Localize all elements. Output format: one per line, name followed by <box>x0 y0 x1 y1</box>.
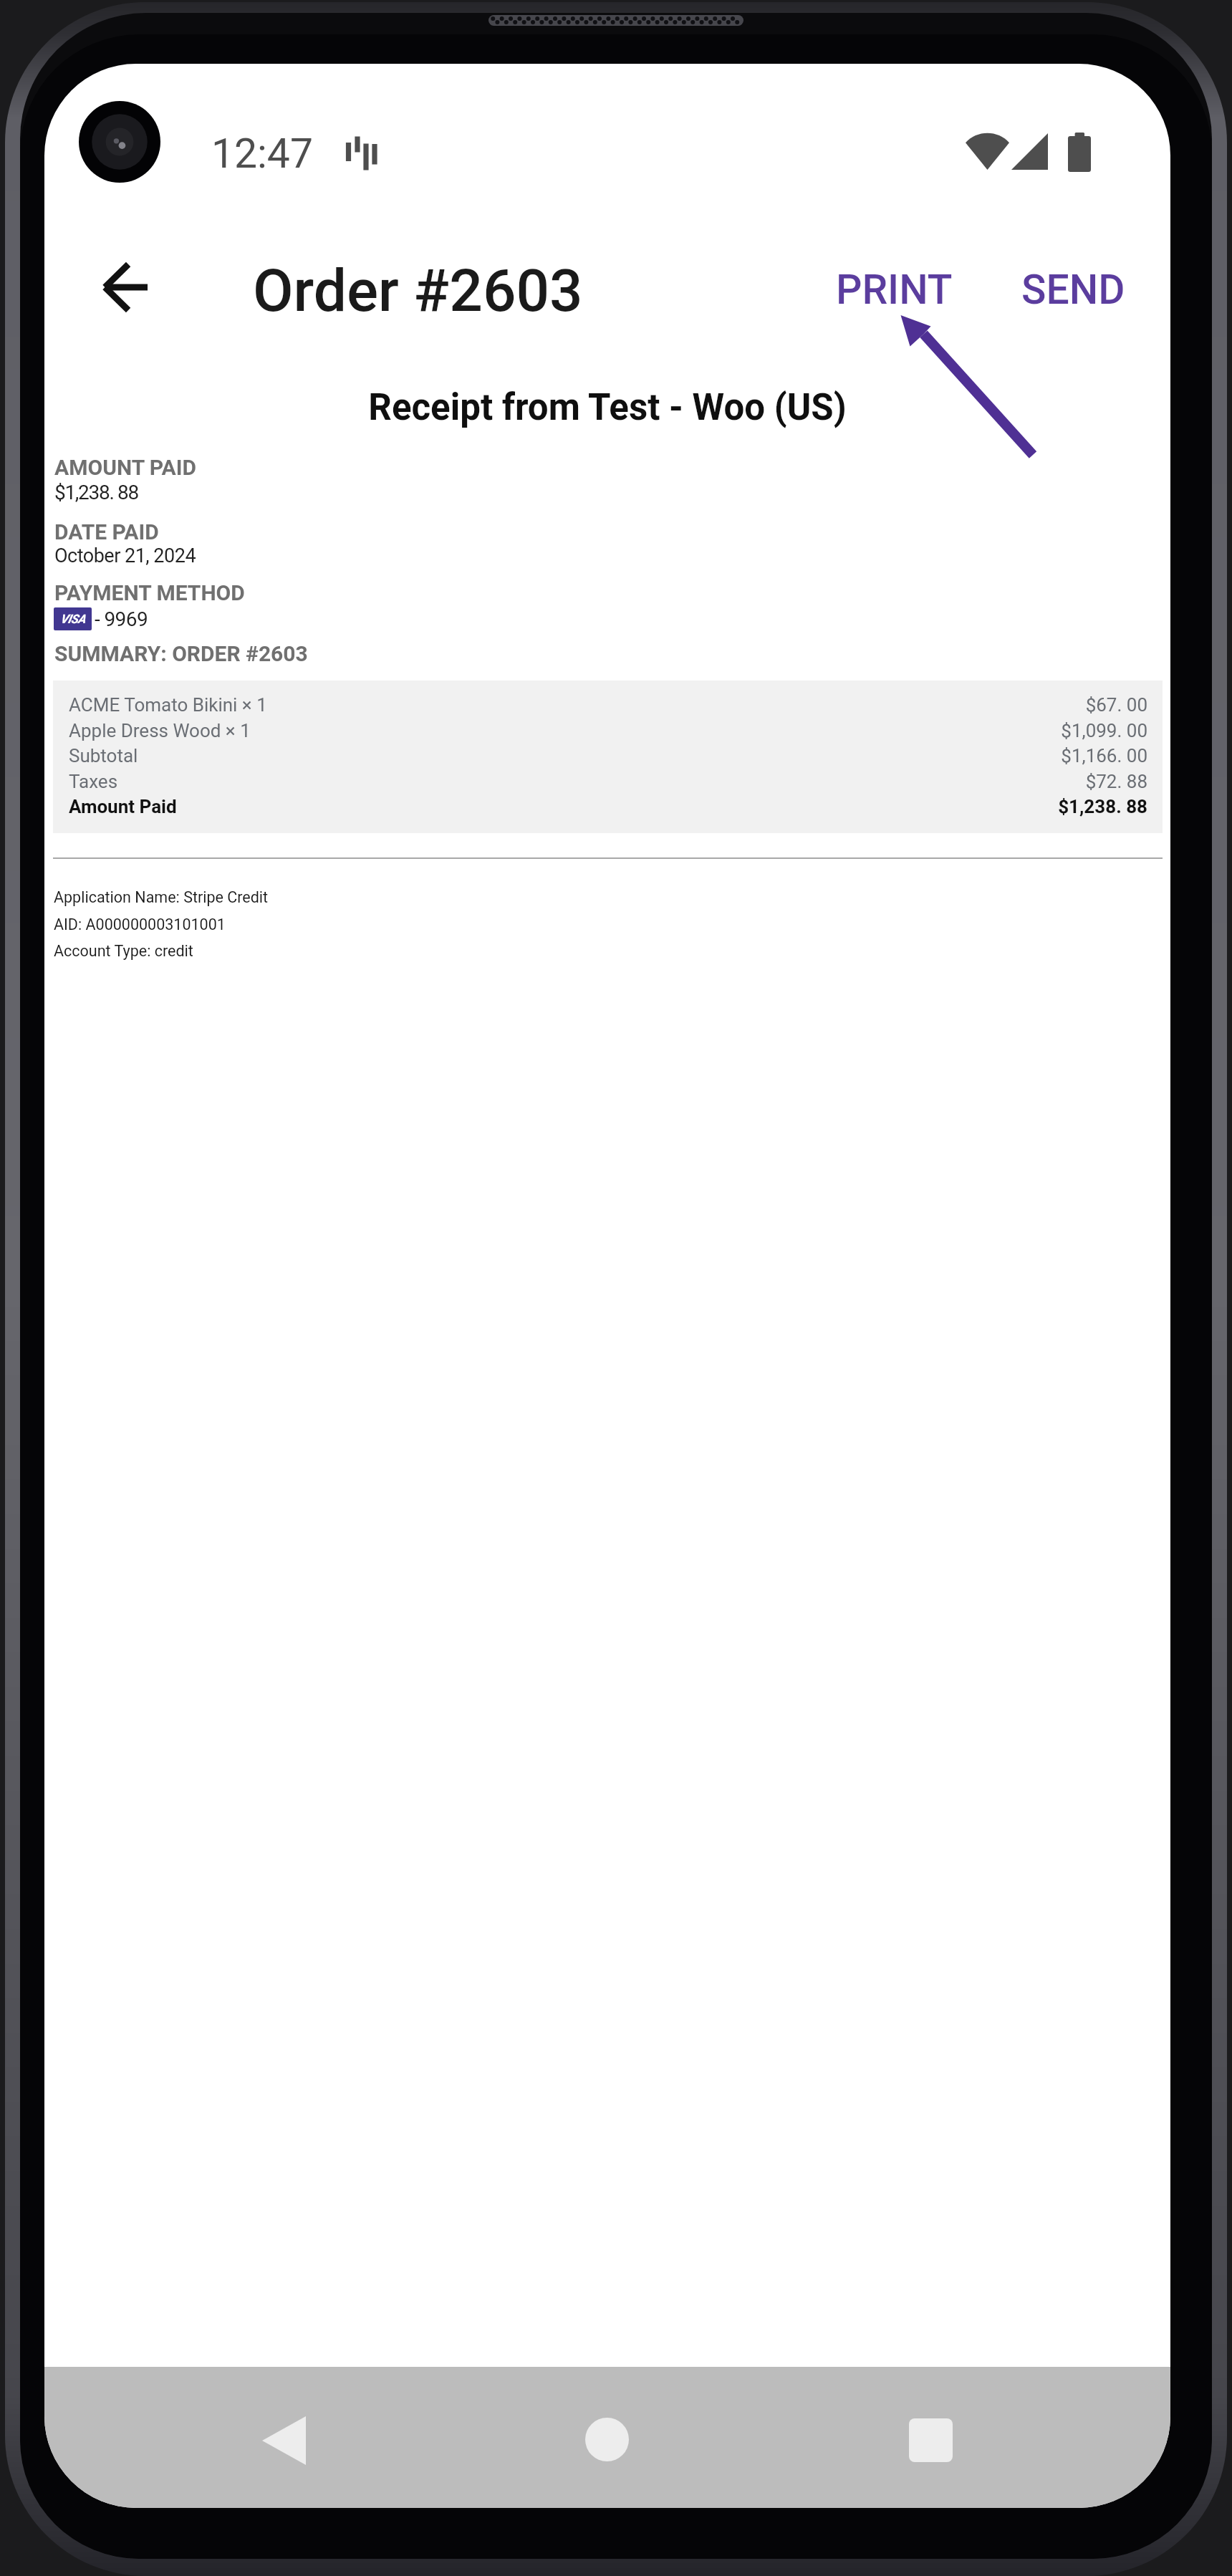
staticText: - 9969 <box>95 607 148 631</box>
staticText: AMOUNT PAID <box>54 455 197 480</box>
staticText: VISA <box>60 612 86 626</box>
staticText: SUMMARY: ORDER #2603 <box>54 641 308 666</box>
button[interactable]: Navigate up <box>79 241 170 333</box>
button[interactable]: Back <box>234 2390 334 2491</box>
staticText: $1,166. 00 <box>718 745 1147 766</box>
staticText: $67. 00 <box>718 694 1147 716</box>
staticText: Apple Dress Wood × 1 <box>69 720 251 741</box>
staticText: 12:47 <box>211 130 313 178</box>
staticText: Order #2603 <box>253 256 583 325</box>
staticText: Application Name: Stripe Credit <box>54 888 269 906</box>
staticText: Taxes <box>69 771 118 792</box>
staticText: DATE PAID <box>54 519 159 544</box>
staticText: PAYMENT METHOD <box>54 580 245 605</box>
staticText: ACME Tomato Bikini × 1 <box>69 694 267 716</box>
button[interactable]: PRINT <box>809 244 979 337</box>
staticText: SEND <box>1021 266 1125 314</box>
staticText: Amount Paid <box>69 796 177 817</box>
staticText: Account Type: credit <box>54 942 193 960</box>
staticText: PRINT <box>836 266 953 314</box>
staticText: Subtotal <box>69 745 138 766</box>
button[interactable]: SEND <box>994 244 1152 337</box>
staticText: $72. 88 <box>718 771 1147 792</box>
button[interactable]: Home <box>557 2389 657 2489</box>
staticText: $1,099. 00 <box>718 720 1147 741</box>
staticText: Receipt from Test - Woo (US) <box>44 386 1170 429</box>
staticText: AID: A000000003101001 <box>54 915 226 933</box>
staticText: $1,238. 88 <box>718 796 1147 817</box>
staticText: October 21, 2024 <box>54 544 196 567</box>
button[interactable]: Recent apps <box>880 2390 981 2490</box>
staticText: $1,238. 88 <box>54 481 138 504</box>
